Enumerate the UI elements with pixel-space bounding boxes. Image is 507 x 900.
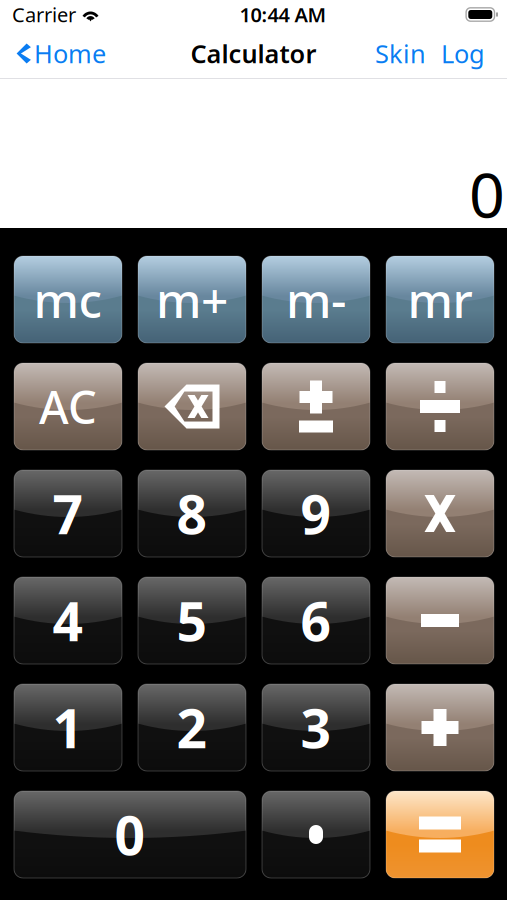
button[interactable]: 0 [14, 791, 246, 878]
button[interactable]: 1 [14, 684, 122, 771]
staticText: Home [34, 37, 106, 70]
staticText: Skin [375, 37, 426, 70]
button[interactable]: 9 [262, 470, 370, 557]
button[interactable]: Skin [375, 29, 426, 78]
button[interactable]: Delete [138, 363, 246, 450]
staticText: 5 [176, 585, 207, 656]
button[interactable]: mr [386, 256, 494, 343]
staticText: m+ [156, 268, 228, 331]
button[interactable]: AC [14, 363, 122, 450]
button[interactable]: 4 [14, 577, 122, 664]
button[interactable]: 5 [138, 577, 246, 664]
button[interactable]: Log [441, 29, 507, 78]
staticText: 7 [52, 478, 83, 549]
button[interactable]: 7 [14, 470, 122, 557]
staticText: mc [33, 268, 102, 331]
button[interactable]: 8 [138, 470, 246, 557]
button[interactable]: Divide [386, 363, 494, 450]
button[interactable]: Plus minus [262, 363, 370, 450]
staticText: Calculator [190, 37, 316, 70]
staticText: mr [407, 268, 472, 331]
staticText: m- [286, 268, 346, 331]
staticText: 10:44 AM [240, 1, 327, 28]
button[interactable]: 3 [262, 684, 370, 771]
staticText: 3 [300, 692, 331, 763]
staticText: 0 [469, 152, 505, 235]
button[interactable]: Subtract [386, 577, 494, 664]
button[interactable]: Decimal point [262, 791, 370, 878]
staticText: 6 [300, 585, 331, 656]
button[interactable]: m- [262, 256, 370, 343]
button[interactable]: Equals [386, 791, 494, 878]
button[interactable]: Add [386, 684, 494, 771]
button[interactable]: Multiply [386, 470, 494, 557]
button[interactable]: mc [14, 256, 122, 343]
button[interactable]: Home [0, 29, 106, 78]
staticText: 0 [114, 799, 145, 870]
staticText: Log [441, 37, 485, 70]
staticText: 8 [176, 478, 207, 549]
staticText: 4 [52, 585, 83, 656]
staticText: Carrier [12, 1, 76, 28]
staticText: AC [39, 376, 97, 437]
staticText: 2 [176, 692, 207, 763]
button[interactable]: 6 [262, 577, 370, 664]
button[interactable]: m+ [138, 256, 246, 343]
staticText: 9 [300, 478, 331, 549]
staticText: 1 [52, 692, 83, 763]
button[interactable]: 2 [138, 684, 246, 771]
